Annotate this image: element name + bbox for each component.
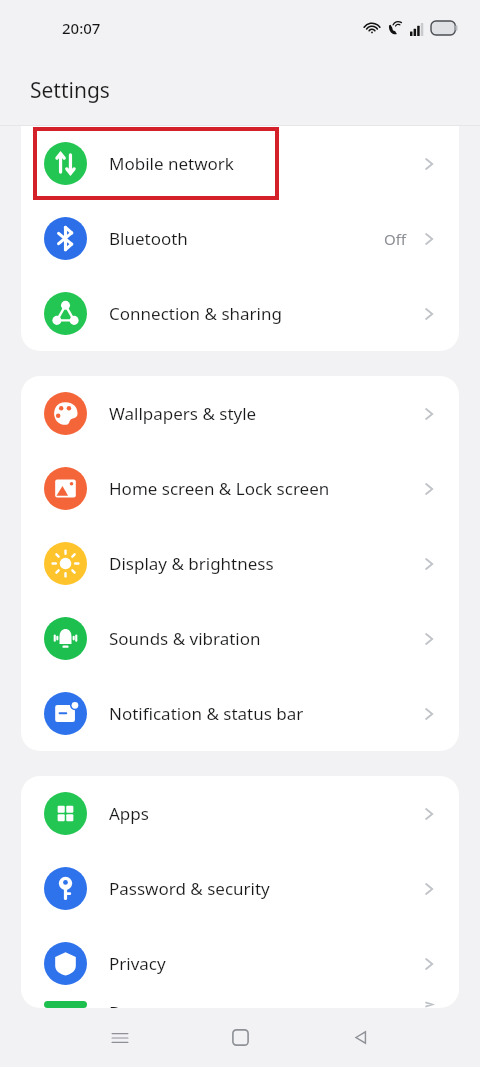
- staticText: Bluetooth: [109, 227, 384, 250]
- staticText: Settings: [30, 76, 110, 105]
- staticText: Display & brightness: [109, 552, 420, 575]
- staticText: Battery: [109, 1001, 420, 1008]
- other: Mobile network: [44, 142, 87, 185]
- button[interactable]: Recents: [60, 1008, 180, 1067]
- staticText: 20:07: [62, 18, 101, 38]
- button[interactable]: Privacy: [21, 926, 459, 1001]
- button[interactable]: Password and security: [21, 851, 459, 926]
- button[interactable]: Home: [180, 1008, 300, 1067]
- other: Privacy: [44, 942, 87, 985]
- other: Bluetooth: [44, 217, 87, 260]
- staticText: Notification & status bar: [109, 702, 420, 725]
- other: Sounds and vibration: [44, 617, 87, 660]
- button[interactable]: Mobile network: [21, 126, 459, 201]
- other: Battery: [44, 1001, 87, 1008]
- other: Connection and sharing: [44, 292, 87, 335]
- other: Wallpapers and style: [44, 392, 87, 435]
- other: Home screen and Lock screen: [44, 467, 87, 510]
- other: Notification and status bar: [44, 692, 87, 735]
- staticText: Off: [384, 229, 407, 249]
- other: Display and brightness: [44, 542, 87, 585]
- button[interactable]: Notification and status bar: [21, 676, 459, 751]
- staticText: Privacy: [109, 952, 420, 975]
- button[interactable]: Back: [300, 1008, 420, 1067]
- staticText: Password & security: [109, 877, 420, 900]
- button[interactable]: Wallpapers and style: [21, 376, 459, 451]
- button[interactable]: Display and brightness: [21, 526, 459, 601]
- staticText: Sounds & vibration: [109, 627, 420, 650]
- button[interactable]: Bluetooth: [21, 201, 459, 276]
- button[interactable]: Battery: [21, 1001, 459, 1008]
- staticText: Wallpapers & style: [109, 402, 420, 425]
- button[interactable]: Sounds and vibration: [21, 601, 459, 676]
- staticText: Mobile network: [109, 152, 420, 175]
- button[interactable]: Home screen and Lock screen: [21, 451, 459, 526]
- staticText: Home screen & Lock screen: [109, 477, 420, 500]
- staticText: Connection & sharing: [109, 302, 420, 325]
- other: Password and security: [44, 867, 87, 910]
- staticText: Apps: [109, 802, 420, 825]
- other: Apps: [44, 792, 87, 835]
- button[interactable]: Apps: [21, 776, 459, 851]
- button[interactable]: Connection and sharing: [21, 276, 459, 351]
